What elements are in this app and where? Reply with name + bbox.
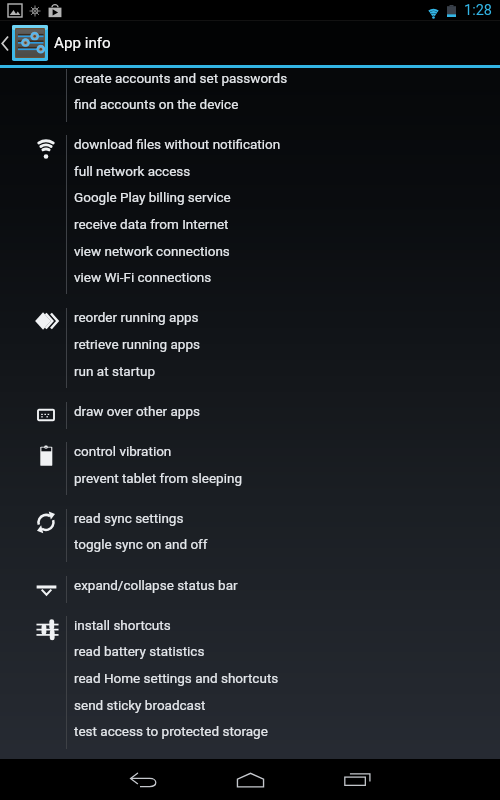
button[interactable]: Recent apps [302, 759, 412, 800]
button[interactable]: control vibration [0, 442, 500, 469]
staticText: download files without notification [74, 136, 281, 152]
staticText: find accounts on the device [74, 96, 239, 112]
staticText: control vibration [74, 443, 172, 459]
staticText: App info [54, 34, 111, 52]
button[interactable]: find accounts on the device [0, 95, 500, 122]
button[interactable]: receive data from Internet [0, 215, 500, 242]
staticText: read battery statistics [74, 643, 205, 659]
button[interactable]: Navigate up [0, 21, 111, 65]
button[interactable]: read sync settings [0, 509, 500, 536]
button[interactable]: read battery statistics [0, 642, 500, 669]
staticText: read Home settings and shortcuts [74, 670, 279, 686]
button[interactable]: prevent tablet from sleeping [0, 469, 500, 496]
staticText: Google Play billing service [74, 189, 231, 205]
button[interactable]: view network connections [0, 242, 500, 269]
staticText: 1:28 [464, 2, 492, 19]
button[interactable]: Back [88, 759, 198, 800]
button[interactable]: test access to protected storage [0, 722, 500, 749]
button[interactable]: view Wi-Fi connections [0, 268, 500, 295]
button[interactable]: download files without notification [0, 135, 500, 162]
staticText: prevent tablet from sleeping [74, 470, 242, 486]
staticText: send sticky broadcast [74, 697, 206, 713]
staticText: test access to protected storage [74, 723, 268, 739]
staticText: retrieve running apps [74, 336, 200, 352]
button[interactable]: send sticky broadcast [0, 696, 500, 723]
button[interactable]: expand/collapse status bar [0, 576, 500, 603]
button[interactable]: toggle sync on and off [0, 535, 500, 562]
button[interactable]: Home [195, 759, 305, 800]
staticText: install shortcuts [74, 617, 171, 633]
staticText: view network connections [74, 243, 230, 259]
staticText: toggle sync on and off [74, 536, 208, 552]
staticText: full network access [74, 163, 191, 179]
button[interactable]: retrieve running apps [0, 335, 500, 362]
staticText: create accounts and set passwords [74, 70, 288, 86]
button[interactable]: reorder running apps [0, 308, 500, 335]
button[interactable]: read Home settings and shortcuts [0, 669, 500, 696]
button[interactable]: install shortcuts [0, 616, 500, 643]
button[interactable]: full network access [0, 162, 500, 189]
staticText: run at startup [74, 363, 155, 379]
staticText: reorder running apps [74, 309, 199, 325]
staticText: view Wi-Fi connections [74, 269, 212, 285]
button[interactable]: Google Play billing service [0, 188, 500, 215]
button[interactable]: create accounts and set passwords [0, 69, 500, 96]
button[interactable]: run at startup [0, 362, 500, 389]
staticText: read sync settings [74, 510, 184, 526]
staticText: receive data from Internet [74, 216, 229, 232]
button[interactable]: draw over other apps [0, 402, 500, 429]
staticText: draw over other apps [74, 403, 201, 419]
staticText: expand/collapse status bar [74, 577, 238, 593]
